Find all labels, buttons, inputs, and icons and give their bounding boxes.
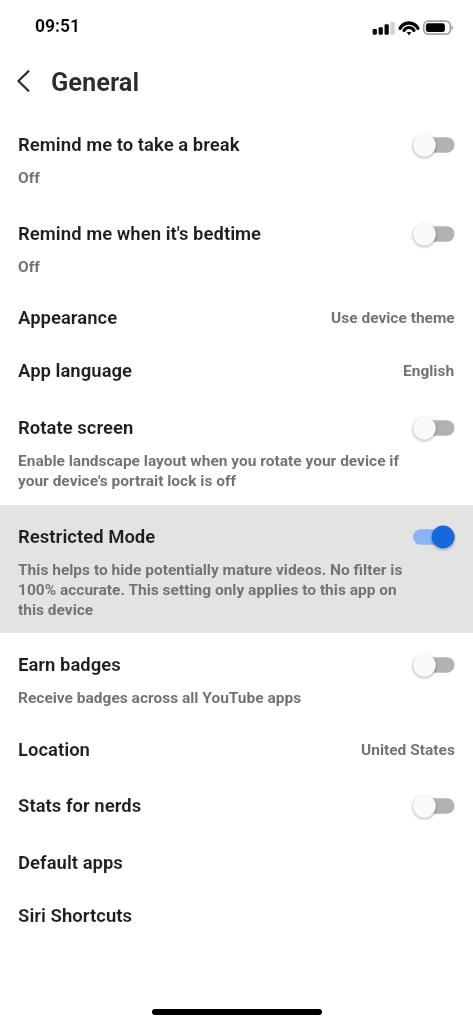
button[interactable]: Back [2,59,45,102]
button[interactable]: Stats for nerds [0,774,473,835]
staticText: United States [361,741,455,759]
button[interactable]: Rotate screen [411,413,455,443]
staticText: Off [18,257,40,277]
staticText: Stats for nerds [18,795,142,817]
button[interactable]: Remind me to take a break [0,113,473,202]
button[interactable]: Default apps [0,835,473,888]
staticText: 09:51 [35,16,81,37]
button[interactable]: Stats for nerds [411,791,455,821]
button[interactable]: App language [0,343,473,396]
staticText: Appearance [18,307,118,329]
staticText: Restricted Mode [18,526,156,548]
staticText: App language [18,360,133,382]
staticText: General [51,67,140,97]
staticText: English [403,362,455,380]
button[interactable]: Location [0,722,473,774]
button[interactable]: Restricted Mode [411,522,455,552]
button[interactable]: Remind me when it's bedtime [411,219,455,249]
button[interactable]: Remind me to take a break [411,130,455,160]
staticText: Off [18,168,40,188]
staticText: Enable landscape layout when you rotate … [18,451,418,491]
button[interactable]: Remind me when it's bedtime [0,202,473,290]
button[interactable]: Earn badges [411,650,455,680]
staticText: This helps to hide potentially mature vi… [18,560,418,620]
button[interactable]: Restricted Mode [0,505,473,633]
button[interactable]: Appearance [0,290,473,343]
staticText: Use device theme [331,309,455,327]
staticText: Location [18,739,90,761]
button[interactable]: Earn badges [0,633,473,722]
staticText: Earn badges [18,654,121,676]
button[interactable]: Rotate screen [0,396,473,505]
staticText: Remind me when it's bedtime [18,223,262,245]
button[interactable]: Siri Shortcuts [0,888,473,941]
staticText: Rotate screen [18,417,134,439]
staticText: Siri Shortcuts [18,905,132,927]
staticText: Remind me to take a break [18,134,240,156]
staticText: Receive badges across all YouTube apps [18,688,302,708]
staticText: Default apps [18,852,123,874]
